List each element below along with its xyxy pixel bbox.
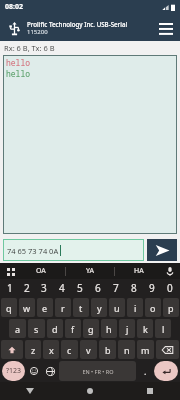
- button[interactable]: 5: [71, 279, 89, 297]
- button[interactable]: x: [43, 340, 59, 359]
- staticText: EN • FR • RO: [82, 368, 114, 375]
- staticText: t: [79, 302, 83, 314]
- button[interactable]: Change language: [43, 361, 57, 381]
- staticText: d: [52, 323, 58, 335]
- button[interactable]: Recents: [120, 382, 180, 400]
- button[interactable]: t: [73, 298, 89, 317]
- button[interactable]: b: [99, 340, 116, 359]
- button[interactable]: r: [55, 298, 71, 317]
- staticText: 4: [59, 281, 65, 295]
- button[interactable]: Home: [60, 382, 120, 400]
- button[interactable]: l: [155, 319, 171, 338]
- staticText: j: [126, 323, 129, 335]
- button[interactable]: Voice input: [163, 265, 176, 278]
- button[interactable]: Enter: [154, 361, 178, 381]
- staticText: 9: [149, 281, 155, 295]
- button[interactable]: a: [9, 319, 26, 338]
- button[interactable]: q: [1, 298, 17, 317]
- staticText: 0: [167, 281, 173, 295]
- staticText: s: [34, 323, 39, 335]
- staticText: k: [143, 323, 148, 335]
- staticText: r: [61, 302, 65, 314]
- staticText: 08:02: [5, 2, 23, 12]
- button[interactable]: Emoji: [27, 361, 41, 381]
- button[interactable]: n: [118, 340, 135, 359]
- button[interactable]: g: [83, 319, 99, 338]
- button[interactable]: 8: [125, 279, 143, 297]
- staticText: g: [88, 323, 94, 335]
- button[interactable]: 1: [1, 279, 18, 297]
- button[interactable]: h: [101, 319, 117, 338]
- staticText: Prolific Technology Inc. USB-Serial Cont…: [27, 20, 153, 28]
- staticText: 7: [113, 281, 119, 295]
- staticText: b: [105, 344, 111, 356]
- staticText: v: [86, 344, 91, 356]
- button[interactable]: USB device: [4, 18, 24, 38]
- button[interactable]: 7: [107, 279, 125, 297]
- staticText: 2: [24, 281, 30, 295]
- button[interactable]: Backspace: [156, 340, 179, 359]
- button[interactable]: hello: [3, 55, 177, 234]
- staticText: m: [141, 344, 150, 356]
- staticText: f: [71, 323, 75, 335]
- staticText: 1: [7, 281, 13, 295]
- button[interactable]: k: [137, 319, 153, 338]
- staticText: c: [67, 344, 72, 356]
- button[interactable]: u: [109, 298, 125, 317]
- button[interactable]: d: [47, 319, 63, 338]
- staticText: q: [6, 302, 12, 314]
- button[interactable]: OA: [17, 263, 65, 279]
- button[interactable]: p: [163, 298, 179, 317]
- button[interactable]: EN • FR • RO: [59, 361, 136, 381]
- button[interactable]: z: [25, 340, 41, 359]
- staticText: l: [162, 323, 165, 335]
- staticText: OA: [36, 266, 46, 276]
- button[interactable]: HA: [115, 263, 163, 279]
- button[interactable]: y: [91, 298, 107, 317]
- button[interactable]: 3: [35, 279, 53, 297]
- button[interactable]: Back: [0, 382, 60, 400]
- staticText: y: [97, 302, 102, 314]
- button[interactable]: f: [65, 319, 81, 338]
- button[interactable]: Shift: [1, 340, 23, 359]
- button[interactable]: o: [145, 298, 161, 317]
- staticText: HA: [134, 266, 144, 276]
- staticText: 115200: [27, 28, 48, 36]
- staticText: 5: [77, 281, 83, 295]
- button[interactable]: m: [137, 340, 154, 359]
- button[interactable]: c: [61, 340, 78, 359]
- button[interactable]: Send: [147, 239, 177, 261]
- button[interactable]: e: [37, 298, 53, 317]
- button[interactable]: .: [138, 361, 152, 381]
- button[interactable]: s: [28, 319, 45, 338]
- staticText: i: [134, 302, 137, 314]
- staticText: p: [168, 302, 174, 314]
- button[interactable]: 74 65 73 74 0A: [3, 239, 144, 261]
- button[interactable]: j: [119, 319, 135, 338]
- button[interactable]: Clipboard: [4, 265, 17, 278]
- button[interactable]: 4: [53, 279, 71, 297]
- staticText: o: [150, 302, 156, 314]
- staticText: 6: [95, 281, 101, 295]
- button[interactable]: 6: [89, 279, 107, 297]
- button[interactable]: w: [19, 298, 35, 317]
- staticText: z: [31, 344, 36, 356]
- staticText: w: [23, 302, 31, 314]
- staticText: a: [15, 323, 21, 335]
- button[interactable]: 9: [143, 279, 161, 297]
- staticText: 3: [41, 281, 47, 295]
- staticText: x: [49, 344, 54, 356]
- staticText: u: [114, 302, 120, 314]
- button[interactable]: Menu: [156, 18, 176, 38]
- button[interactable]: YA: [66, 263, 114, 279]
- button[interactable]: 0: [161, 279, 179, 297]
- button[interactable]: ?123: [2, 361, 25, 381]
- staticText: 74 65 73 74 0A: [7, 246, 59, 256]
- button[interactable]: i: [127, 298, 143, 317]
- button[interactable]: 2: [18, 279, 35, 297]
- staticText: n: [124, 344, 130, 356]
- staticText: hello: [6, 57, 30, 68]
- staticText: 8: [131, 281, 137, 295]
- staticText: ?123: [6, 366, 22, 376]
- button[interactable]: v: [80, 340, 97, 359]
